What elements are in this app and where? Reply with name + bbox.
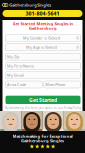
staticText: My Gender is (Select) — [23, 35, 60, 41]
staticText: My Age is (Select) — [26, 45, 57, 50]
staticText: GaithersburgSingles — [9, 2, 51, 8]
button[interactable]: Get Started — [5, 96, 80, 104]
staticText: Gaithersburg Singles — [21, 138, 64, 143]
staticText: Main Phone — [45, 82, 65, 87]
staticText: Gaithersburg — [29, 25, 57, 31]
staticText: Matchmaking For Exceptional — [12, 133, 72, 139]
button[interactable]: Main Phone — [44, 81, 80, 88]
button[interactable]: My Age is (Select) — [5, 44, 80, 51]
button[interactable]: My First Name — [5, 62, 80, 69]
staticText: By submitting this form, you agree to ou… — [5, 106, 81, 110]
staticText: 301-804-5641 — [25, 10, 59, 17]
staticText: Get Started — [29, 96, 57, 103]
staticText: Get Started Meeting Singles in — [12, 21, 73, 26]
button[interactable]: Area Code — [5, 81, 42, 88]
button[interactable]: My Email — [5, 72, 80, 79]
button[interactable]: 301-804-5641 — [2, 10, 82, 17]
staticText: My Zip — [7, 54, 19, 59]
staticText: My Email — [7, 72, 24, 78]
staticText: My First Name — [7, 63, 34, 68]
staticText: Area Code — [7, 82, 26, 87]
button[interactable]: My Zip — [5, 53, 80, 60]
button[interactable]: My Gender is (Select) — [5, 34, 80, 41]
